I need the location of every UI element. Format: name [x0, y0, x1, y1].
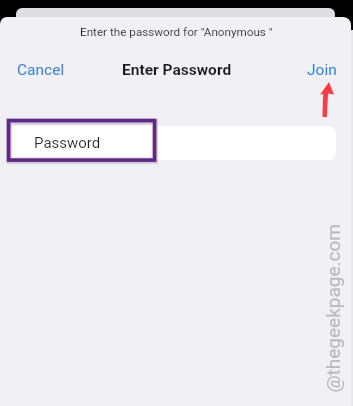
staticText: Enter the password for "Anonymous "	[80, 25, 273, 39]
staticText: @thegeekpage.com	[321, 223, 343, 392]
staticText: Enter Password	[122, 61, 232, 79]
button[interactable]: Join	[299, 58, 345, 82]
button[interactable]: Cancel	[17, 58, 65, 82]
staticText: Cancel	[17, 61, 65, 79]
button[interactable]: Password	[9, 126, 336, 160]
staticText: Join	[307, 61, 337, 79]
staticText: Password	[34, 134, 101, 152]
